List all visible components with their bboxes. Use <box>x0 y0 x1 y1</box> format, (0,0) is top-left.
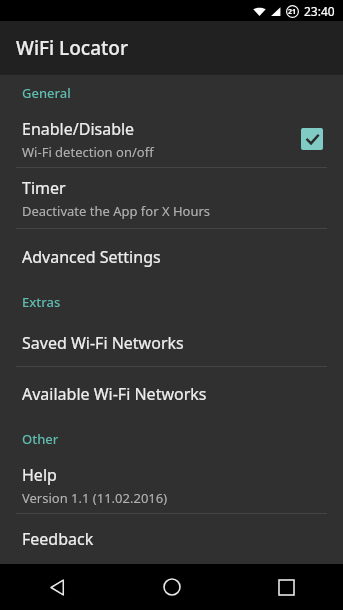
button[interactable]: Enable or disable Wi-Fi detection <box>301 128 323 150</box>
button[interactable]: Home <box>115 564 229 610</box>
staticText: 21 <box>288 7 297 17</box>
staticText: Advanced Settings <box>22 246 161 268</box>
staticText: 23:40 <box>304 3 335 19</box>
button[interactable]: Saved Wi-Fi Networks <box>0 320 343 366</box>
button[interactable]: Enable/Disable <box>0 111 343 167</box>
button[interactable]: Advanced Settings <box>0 229 343 284</box>
staticText: Extras <box>22 293 61 311</box>
button[interactable]: Timer <box>0 168 343 228</box>
staticText: Other <box>22 430 59 448</box>
staticText: Enable/Disable <box>22 118 135 140</box>
staticText: Timer <box>22 177 66 199</box>
staticText: Feedback <box>22 528 94 550</box>
button[interactable]: Feedback <box>0 514 343 564</box>
staticText: Saved Wi-Fi Networks <box>22 332 184 354</box>
staticText: Version 1.1 (11.02.2016) <box>22 489 168 507</box>
button[interactable]: Help <box>0 457 343 513</box>
button[interactable]: Available Wi-Fi Networks <box>0 367 343 421</box>
button[interactable]: Recent apps <box>229 564 343 610</box>
staticText: Help <box>22 464 57 486</box>
staticText: Available Wi-Fi Networks <box>22 383 207 405</box>
staticText: Deactivate the App for X Hours <box>22 202 211 220</box>
staticText: General <box>22 84 71 102</box>
staticText: Wi-Fi detection on/off <box>22 143 154 161</box>
staticText: WiFi Locator <box>16 35 128 61</box>
button[interactable]: Back <box>0 564 115 610</box>
